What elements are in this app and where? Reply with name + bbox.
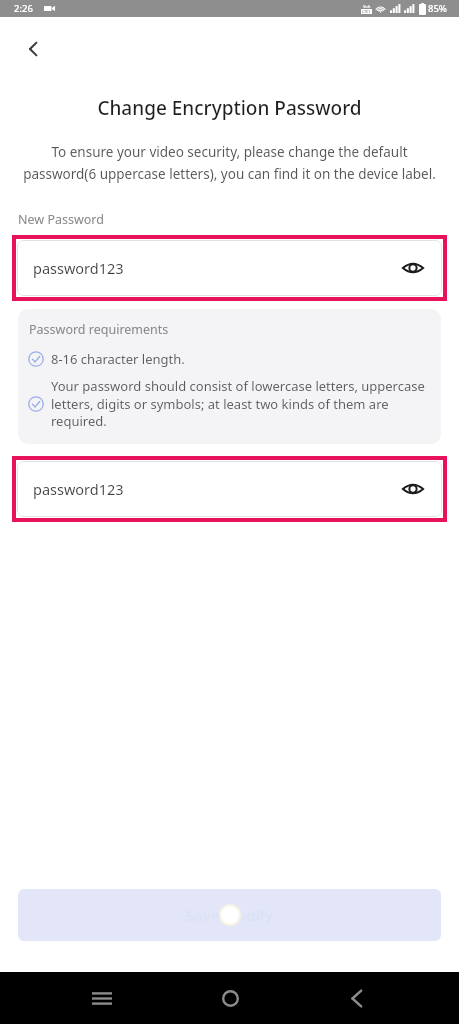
staticText: 85%: [428, 2, 447, 15]
staticText: 2:26: [14, 2, 33, 15]
button[interactable]: Back: [331, 972, 383, 1024]
staticText: LTE1: [362, 9, 371, 14]
button[interactable]: Back: [14, 29, 54, 69]
staticText: 8-16 character length.: [51, 350, 185, 368]
button[interactable]: Home: [204, 972, 256, 1024]
staticText: password123: [33, 258, 398, 278]
staticText: Password requirements: [29, 321, 169, 338]
staticText: password123: [33, 479, 398, 499]
button[interactable]: password123: [17, 461, 442, 517]
button[interactable]: Show password: [398, 474, 428, 504]
button[interactable]: password123: [17, 240, 442, 296]
staticText: Your password should consist of lowercas…: [51, 377, 429, 430]
staticText: Volt: [363, 4, 371, 9]
staticText: Save Modify: [186, 905, 273, 925]
staticText: To ensure your video security, please ch…: [22, 143, 437, 183]
button[interactable]: Show password: [398, 253, 428, 283]
button[interactable]: Recent apps: [76, 972, 128, 1024]
button[interactable]: Save Modify: [18, 889, 441, 941]
staticText: Change Encryption Password: [0, 95, 459, 121]
staticText: New Password: [18, 211, 104, 228]
